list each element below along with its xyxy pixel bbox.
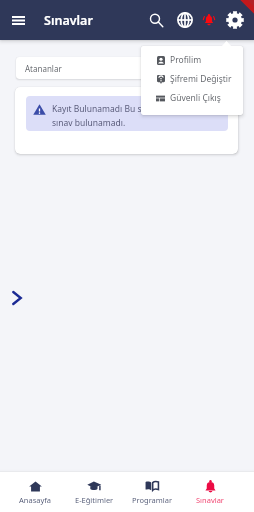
staticText: Programlar: [132, 495, 173, 505]
button[interactable]: Search: [144, 6, 169, 34]
staticText: Sınavlar: [44, 12, 93, 29]
button[interactable]: Settings: [222, 6, 247, 34]
button[interactable]: Anasayfa: [6, 472, 65, 512]
button[interactable]: Sınavlar: [181, 472, 239, 512]
staticText: Güvenli Çıkış: [170, 92, 221, 104]
staticText: Kayıt Bulunamadı Bu sayfada gösterilecek…: [52, 103, 224, 128]
button[interactable]: Atananlar: [16, 57, 238, 79]
staticText: E-Eğitimler: [75, 495, 114, 505]
button[interactable]: Şifremi Değiştir: [141, 69, 243, 88]
button[interactable]: E-Eğitimler: [65, 472, 123, 512]
staticText: Şifremi Değiştir: [170, 73, 232, 85]
button[interactable]: Güvenli Çıkış: [141, 88, 243, 107]
staticText: Atananlar: [25, 63, 62, 74]
button[interactable]: Next page: [11, 289, 23, 307]
button[interactable]: Profilim: [141, 50, 243, 69]
button[interactable]: Language: [172, 6, 197, 34]
button[interactable]: Programlar: [123, 472, 181, 512]
button[interactable]: Notifications: [197, 6, 220, 34]
staticText: Sınavlar: [196, 495, 224, 505]
staticText: Profilim: [170, 54, 202, 66]
button[interactable]: Menu: [6, 6, 31, 34]
staticText: Anasayfa: [19, 495, 52, 505]
